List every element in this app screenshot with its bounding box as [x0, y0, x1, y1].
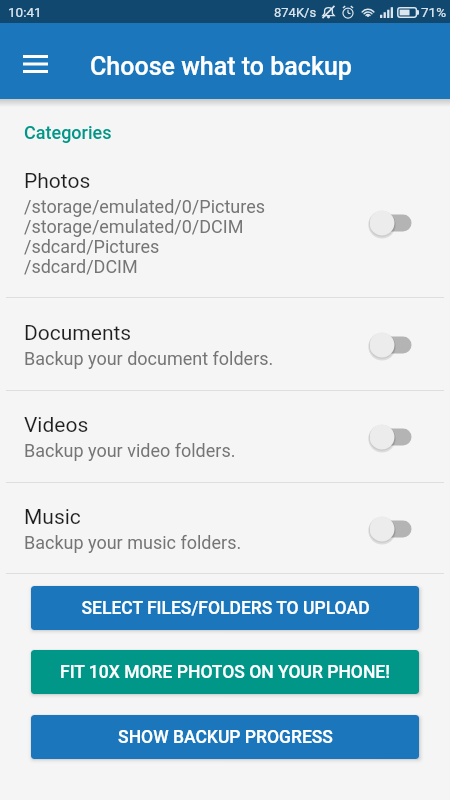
button[interactable]: Toggle category [369, 209, 414, 237]
button[interactable]: Toggle category [369, 331, 414, 359]
button[interactable]: Videos [0, 391, 450, 483]
staticText: FIT 10X MORE PHOTOS ON YOUR PHONE! [60, 662, 390, 683]
staticText: Music [24, 505, 81, 530]
button[interactable]: Documents [0, 298, 450, 391]
staticText: Backup your music folders. [24, 532, 242, 553]
staticText: SELECT FILES/FOLDERS TO UPLOAD [81, 598, 370, 619]
button[interactable]: FIT 10X MORE PHOTOS ON YOUR PHONE! [31, 650, 419, 694]
staticText: 10:41 [8, 4, 42, 20]
staticText: Videos [24, 413, 89, 438]
staticText: SHOW BACKUP PROGRESS [118, 727, 333, 748]
staticText: Choose what to backup [90, 52, 352, 81]
staticText: Backup your document folders. [24, 348, 274, 369]
staticText: Photos [24, 169, 91, 194]
button[interactable]: Toggle category [369, 515, 414, 543]
button[interactable]: Open navigation drawer [11, 40, 59, 88]
button[interactable]: Music [0, 483, 450, 574]
button[interactable]: SELECT FILES/FOLDERS TO UPLOAD [31, 586, 419, 630]
staticText: 874K/s [274, 5, 317, 20]
staticText: /storage/emulated/0/Pictures /storage/em… [24, 196, 266, 277]
button[interactable]: Photos [0, 147, 450, 298]
button[interactable]: SHOW BACKUP PROGRESS [31, 715, 419, 759]
button[interactable]: Toggle category [369, 423, 414, 451]
staticText: Documents [24, 321, 132, 346]
staticText: Backup your video folders. [24, 440, 236, 461]
staticText: Categories [24, 122, 112, 143]
staticText: 71% [421, 4, 447, 20]
